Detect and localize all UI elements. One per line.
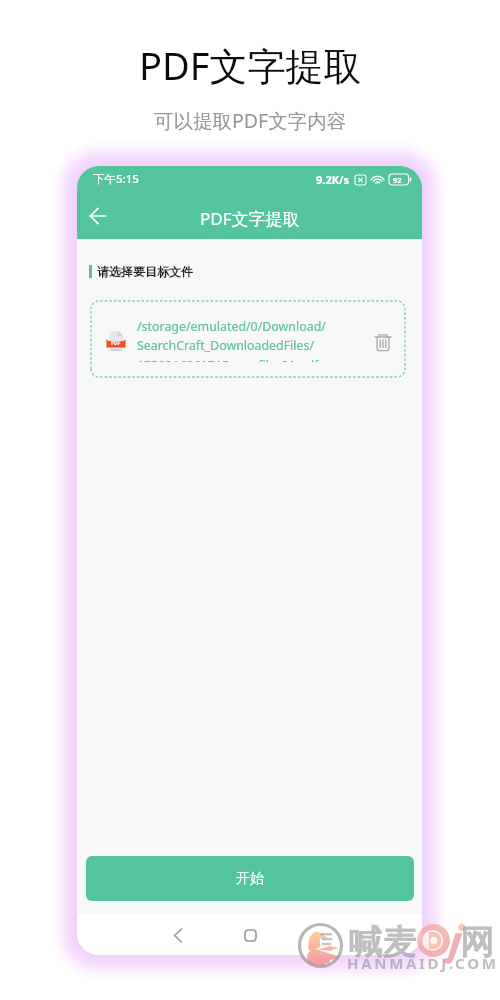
staticText: /storage/emulated/0/Download/SearchCraft… [137,318,349,362]
staticText: 可以提取PDF文字内容 [154,107,347,134]
staticText: HANMAIDJ.COM [347,953,499,973]
staticText: 网 [460,921,494,964]
button[interactable]: Back [161,918,195,952]
button[interactable]: Back [83,201,113,231]
staticText: 92 [393,175,402,185]
staticText: 喊麦 [348,921,416,964]
staticText: 下午5:15 [93,171,139,187]
staticText: 开始 [236,870,264,888]
button[interactable]: PDF [91,301,405,377]
staticText: PDF [111,340,121,347]
button[interactable]: Delete [370,329,396,355]
button[interactable]: 开始 [86,856,414,901]
staticText: PDF文字提取 [139,39,362,91]
staticText: 9.2K/s [316,172,350,187]
staticText: PDF文字提取 [200,207,300,230]
button[interactable]: Home [233,918,267,952]
staticText: 请选择要目标文件 [97,264,193,279]
